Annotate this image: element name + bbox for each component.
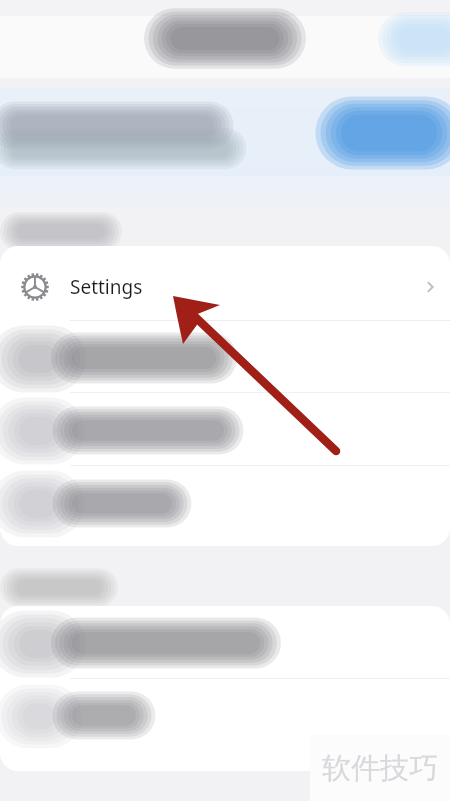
other: Open Settings [410, 254, 450, 320]
button[interactable]: Settings [0, 254, 450, 320]
staticText: Settings [70, 274, 143, 300]
staticText: 软件技巧 [322, 750, 438, 787]
